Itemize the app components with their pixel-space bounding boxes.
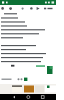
button[interactable]: Back [0, 94, 22, 100]
button[interactable]: Live [52, 5, 64, 12]
button[interactable]: Menu [0, 5, 7, 12]
button[interactable]: Home [22, 94, 43, 100]
button[interactable]: Back [7, 5, 14, 12]
button[interactable]: Recents [43, 94, 64, 100]
button[interactable]: Send [23, 77, 28, 82]
button[interactable]: Play [45, 5, 52, 12]
